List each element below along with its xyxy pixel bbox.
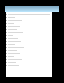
button[interactable] bbox=[6, 16, 52, 19]
button[interactable] bbox=[6, 52, 52, 55]
button[interactable] bbox=[6, 13, 52, 16]
button[interactable] bbox=[6, 25, 52, 28]
button[interactable] bbox=[6, 40, 52, 43]
button[interactable] bbox=[6, 61, 52, 64]
button[interactable] bbox=[6, 28, 52, 31]
button[interactable] bbox=[6, 19, 52, 22]
button[interactable] bbox=[6, 64, 52, 67]
button[interactable] bbox=[6, 49, 52, 52]
button[interactable] bbox=[6, 58, 52, 61]
button[interactable] bbox=[5, 6, 59, 12]
button[interactable] bbox=[6, 31, 52, 34]
button[interactable] bbox=[6, 55, 52, 58]
button[interactable] bbox=[6, 43, 52, 46]
button[interactable] bbox=[6, 46, 52, 49]
button[interactable] bbox=[6, 37, 52, 40]
button[interactable] bbox=[6, 22, 52, 25]
button[interactable] bbox=[6, 34, 52, 37]
